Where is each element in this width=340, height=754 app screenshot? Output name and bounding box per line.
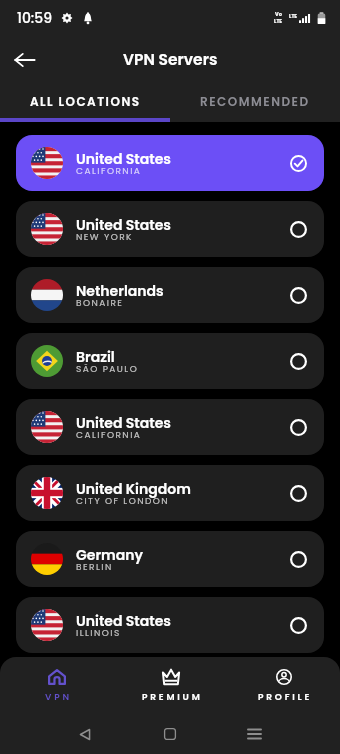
staticText: LTE	[289, 13, 298, 20]
button[interactable]: Netherlands	[16, 267, 324, 323]
button[interactable]: Brazil	[16, 333, 324, 389]
staticText: United States	[76, 149, 171, 169]
button[interactable]: RECOMMENDED	[170, 84, 340, 118]
staticText: BONAIRE	[76, 297, 124, 306]
staticText: PREMIUM	[142, 691, 203, 704]
button[interactable]: VPN	[0, 664, 114, 708]
staticText: United States	[76, 215, 171, 235]
button[interactable]: United States	[16, 201, 324, 257]
staticText: United Kingdom	[76, 479, 191, 499]
staticText: PROFILE	[258, 691, 313, 704]
button[interactable]: PREMIUM	[114, 664, 227, 708]
button[interactable]: PROFILE	[227, 664, 340, 708]
button[interactable]: Home	[127, 714, 212, 754]
button[interactable]: Recent apps	[212, 714, 297, 754]
button[interactable]: Back	[42, 714, 127, 754]
staticText: VPN	[45, 691, 72, 704]
staticText: BERLIN	[76, 561, 113, 570]
button[interactable]: United States	[16, 399, 324, 455]
staticText: 10:59	[17, 8, 53, 28]
button[interactable]: Back	[6, 41, 44, 79]
staticText: CALIFORNIA	[76, 429, 142, 438]
staticText: Netherlands	[76, 281, 164, 301]
staticText: SÃO PAULO	[76, 363, 139, 372]
staticText: LTE	[274, 18, 283, 25]
staticText: Vo	[275, 11, 282, 18]
staticText: United States	[76, 611, 171, 631]
staticText: CALIFORNIA	[76, 165, 142, 174]
staticText: NEW YORK	[76, 231, 133, 240]
staticText: RECOMMENDED	[200, 93, 310, 110]
staticText: United States	[76, 413, 171, 433]
button[interactable]: Germany	[16, 531, 324, 587]
button[interactable]: ALL LOCATIONS	[0, 84, 170, 118]
staticText: CITY OF LONDON	[76, 495, 170, 504]
staticText: ALL LOCATIONS	[30, 93, 141, 110]
staticText: ILLINOIS	[76, 627, 121, 636]
staticText: Germany	[76, 545, 143, 565]
button[interactable]: United Kingdom	[16, 465, 324, 521]
button[interactable]: United States	[16, 597, 324, 653]
staticText: Brazil	[76, 347, 115, 367]
staticText: VPN Servers	[123, 49, 218, 71]
button[interactable]: United States	[16, 135, 324, 191]
